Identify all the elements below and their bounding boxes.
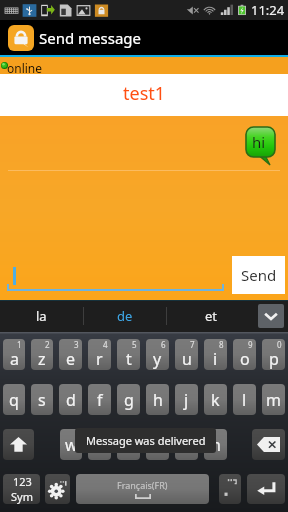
staticText: test1 [123,81,166,106]
staticText: c [125,434,133,456]
staticText: r [96,348,103,370]
staticText: Sym [11,489,33,504]
staticText: e [66,348,76,370]
staticText: Send message [39,28,142,48]
button[interactable]: Send [232,256,285,294]
staticText: 4 [103,339,108,350]
button[interactable]: m [262,384,285,415]
button[interactable]: Punctuation [219,474,241,504]
button[interactable]: l [233,384,256,415]
staticText: p [269,348,279,370]
staticText: t [126,348,132,370]
staticText: h [153,389,163,411]
button[interactable]: d [59,384,82,415]
staticText: j [184,389,189,411]
button[interactable]: x [88,429,111,460]
button[interactable]: Enter [247,474,285,504]
staticText: 5 [132,339,137,350]
staticText: et [205,307,218,325]
staticText: 0 [277,339,282,350]
staticText: v [153,434,162,456]
staticText: q [9,389,19,411]
staticText: 2 [45,339,50,350]
staticText: f [97,389,103,411]
button[interactable]: z [31,339,53,370]
staticText: Send [241,265,277,285]
staticText: s [38,389,46,411]
button[interactable]: de [83,300,166,332]
staticText: k [211,389,220,411]
staticText: 1 [17,339,22,350]
staticText: d [66,389,76,411]
staticText: 11:24 [251,1,285,19]
button[interactable]: e [59,339,82,370]
button[interactable]: s [31,384,53,415]
button[interactable]: f [88,384,111,415]
staticText: i [213,348,218,370]
button[interactable]: p [262,339,285,370]
button[interactable]: t [117,339,140,370]
staticText: 7 [190,339,195,350]
button[interactable]: y [146,339,169,370]
button[interactable]: g [117,384,140,415]
staticText: 9 [248,339,253,350]
button[interactable]: Shift [3,429,34,460]
staticText: online [7,60,43,76]
staticText: y [153,348,162,370]
button[interactable]: More suggestions [258,304,284,328]
staticText: 6 [161,339,166,350]
button[interactable]: n [204,429,227,460]
staticText: de [117,307,133,325]
staticText: Français(FR) [117,479,168,491]
staticText: w [65,434,78,456]
staticText: z [38,348,46,370]
button[interactable]: o [233,339,256,370]
button[interactable]: v [146,429,169,460]
button[interactable]: r [88,339,111,370]
button[interactable]: Backspace [252,429,285,460]
button[interactable]: 123 [3,474,40,504]
staticText: 3 [74,339,79,350]
button[interactable]: Settings [45,474,70,504]
button[interactable]: k [204,384,227,415]
button[interactable]: u [175,339,198,370]
button[interactable]: a [3,339,25,370]
button[interactable]: Send message [0,20,288,55]
staticText: b [182,434,192,456]
button[interactable]: i [204,339,227,370]
button[interactable]: h [146,384,169,415]
button[interactable]: w [60,429,82,460]
button[interactable]: j [175,384,198,415]
staticText: g [124,389,134,411]
button[interactable]: b [175,429,198,460]
staticText: o [240,348,250,370]
button[interactable]: et [166,300,256,332]
staticText: 123 [13,474,32,489]
button[interactable]: Space [76,474,209,504]
button[interactable]: c [117,429,140,460]
button[interactable]: q [3,384,25,415]
button[interactable]: la [0,300,83,332]
staticText: la [36,307,47,325]
staticText: n [211,434,221,456]
staticText: hi [252,132,266,152]
staticText: u [182,348,192,370]
staticText: 8 [219,339,224,350]
staticText: l [242,389,247,411]
staticText: a [10,348,19,370]
staticText: x [95,434,104,456]
staticText: m [266,389,281,411]
staticText: Message was delivered [86,433,206,448]
